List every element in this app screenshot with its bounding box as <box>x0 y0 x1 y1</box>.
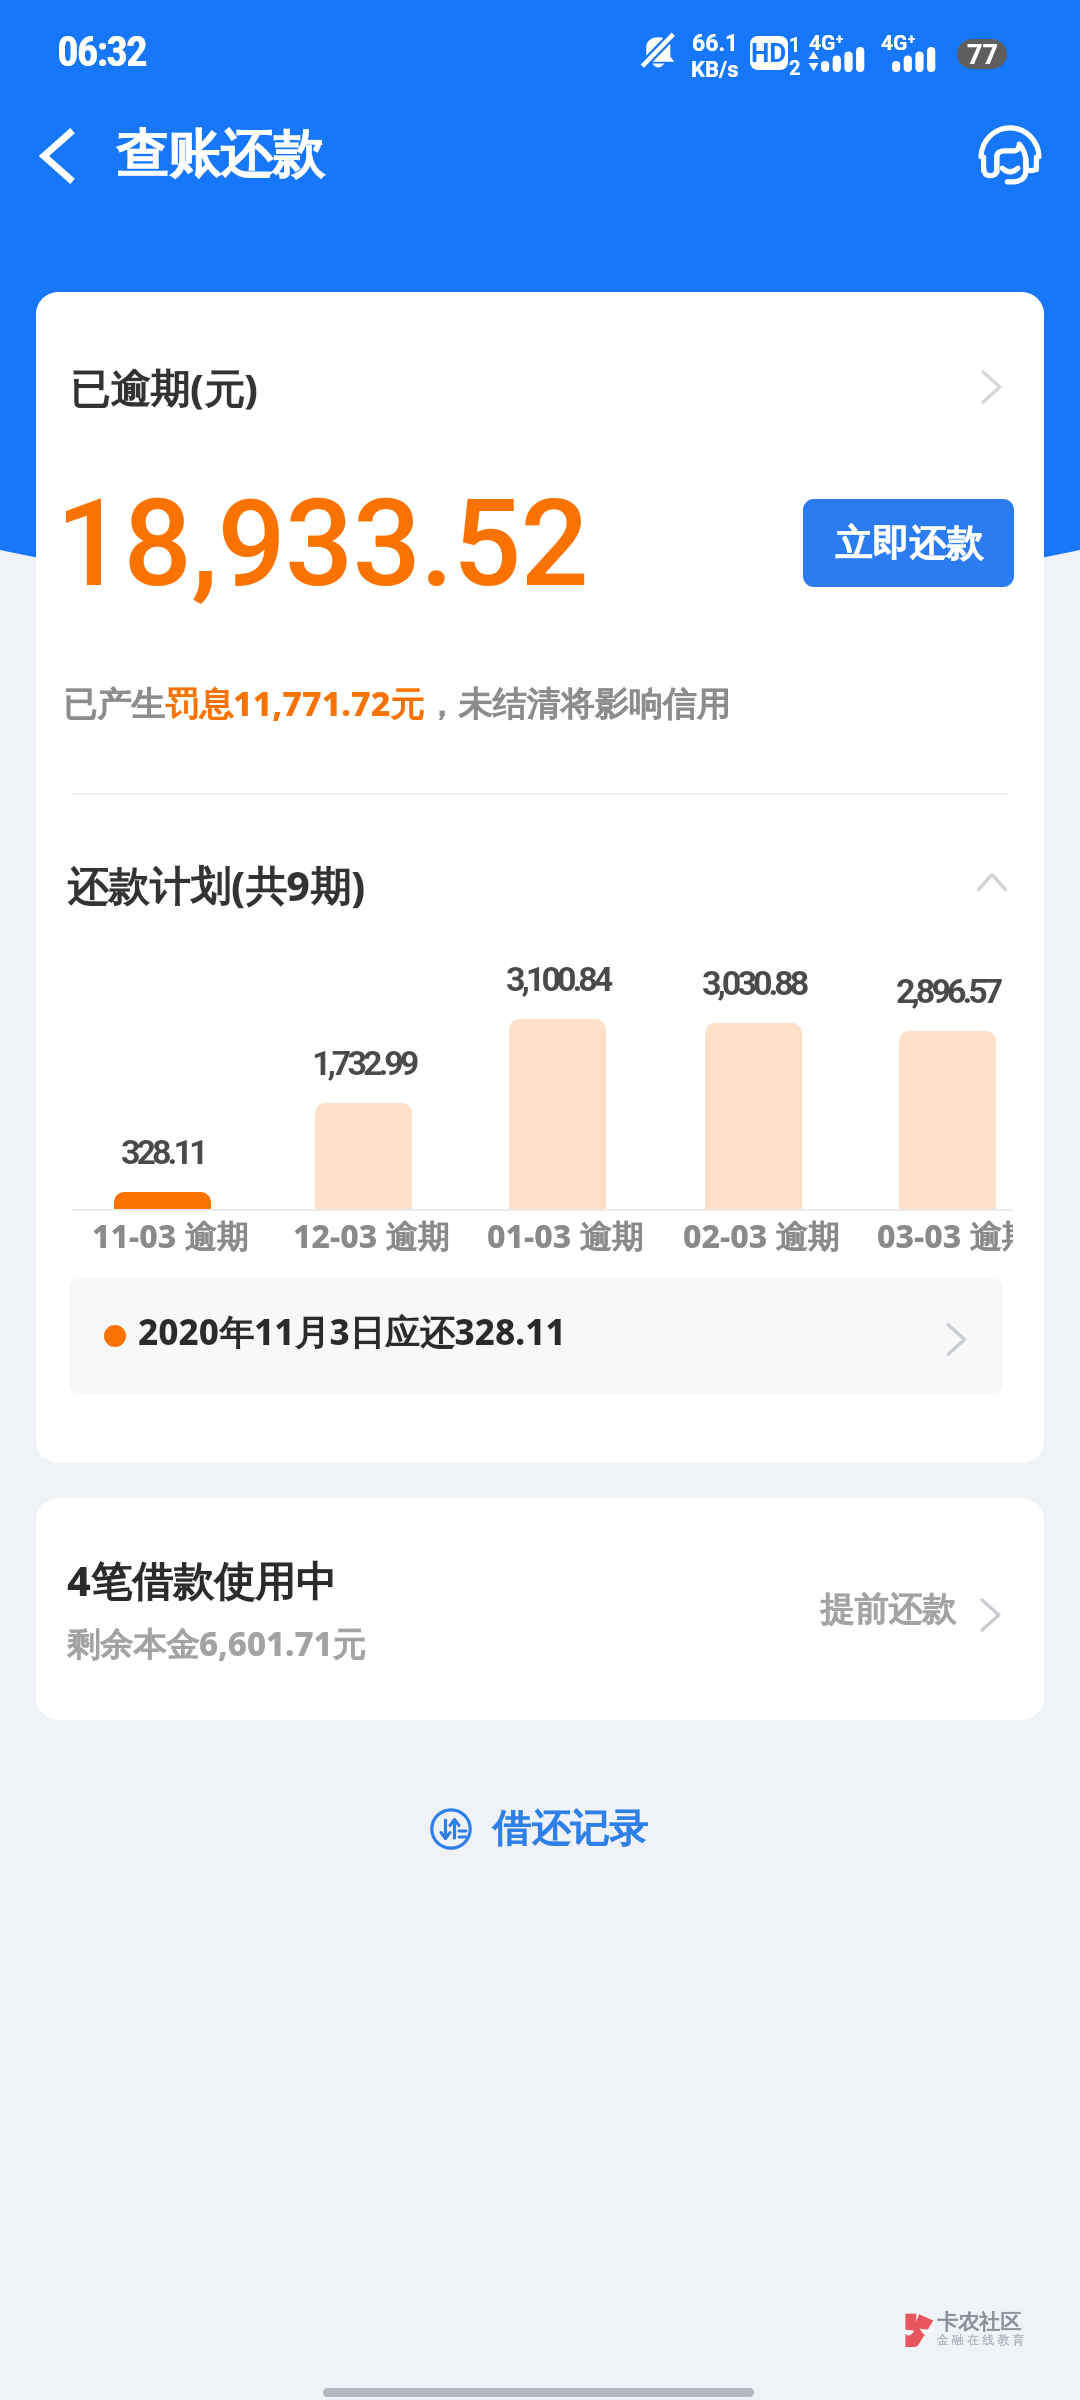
staticText: 借还记录 <box>492 1804 648 1853</box>
button[interactable]: Back <box>15 114 99 198</box>
button[interactable]: Collapse repayment plan <box>947 837 1037 927</box>
button[interactable]: 借还记录 <box>418 1796 660 1861</box>
staticText: 1 <box>789 33 801 56</box>
staticText: 11-03 逾期 <box>92 1214 249 1258</box>
staticText: 02-03 逾期 <box>683 1214 840 1258</box>
staticText: 4笔借款使用中 <box>67 1552 337 1608</box>
staticText: 12-03 逾期 <box>293 1214 450 1258</box>
staticText: 18,933.52 <box>56 474 589 615</box>
staticText: 3,100.84 <box>506 959 610 999</box>
staticText: 3,030.88 <box>702 963 806 1003</box>
staticText: 立即还款 <box>835 520 983 567</box>
staticText: 已逾期(元) <box>70 360 258 415</box>
staticText: 金 融 在 线 教 育 <box>937 2331 1025 2347</box>
staticText: 4G⁺ <box>881 31 916 56</box>
staticText: 还款计划(共9期) <box>67 857 366 913</box>
staticText: HD <box>751 38 787 68</box>
staticText: 77 <box>967 39 998 69</box>
button[interactable]: 2020年11月3日应还328.11 <box>69 1278 1003 1394</box>
staticText: 01-03 逾期 <box>487 1214 644 1258</box>
staticText: 03-03 逾期 <box>877 1214 1013 1258</box>
staticText: 328.11 <box>121 1132 205 1172</box>
button[interactable]: Overdue detail <box>951 347 1031 427</box>
staticText: 提前还款 <box>820 1588 956 1631</box>
staticText: 66.1 <box>692 30 739 57</box>
staticText: 2 <box>789 56 801 79</box>
staticText: 1,732.99 <box>312 1043 416 1083</box>
button[interactable]: 4笔借款使用中 <box>36 1498 1044 1720</box>
button[interactable]: Customer service <box>960 107 1060 207</box>
button[interactable]: 立即还款 <box>803 499 1014 587</box>
staticText: 已产生罚息11,771.72元，未结清将影响信用 <box>63 680 731 726</box>
staticText: 4G⁺ <box>809 31 844 56</box>
staticText: 查账还款 <box>116 122 324 188</box>
staticText: 2020年11月3日应还328.11 <box>138 1308 566 1356</box>
staticText: 2,896.57 <box>896 971 1000 1011</box>
staticText: KB/s <box>691 57 739 83</box>
staticText: 06:32 <box>57 26 146 76</box>
staticText: 卡农社区 <box>937 2309 1021 2335</box>
staticText: 剩余本金6,601.71元 <box>67 1621 366 1666</box>
